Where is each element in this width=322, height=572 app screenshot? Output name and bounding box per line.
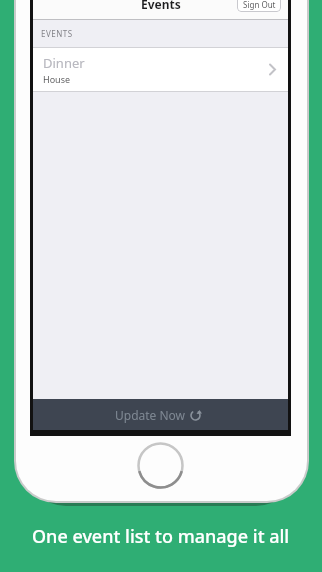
staticText: House bbox=[43, 73, 71, 85]
staticText: Sign Out bbox=[243, 0, 276, 10]
button[interactable]: Update Now bbox=[33, 399, 288, 430]
button[interactable]: Sign Out bbox=[237, 0, 281, 12]
button[interactable]: Dinner bbox=[33, 48, 288, 91]
staticText: Events bbox=[141, 0, 181, 12]
staticText: Dinner bbox=[43, 54, 85, 72]
staticText: Update Now bbox=[115, 407, 186, 423]
staticText: EVENTS bbox=[41, 28, 73, 39]
staticText: One event list to manage it all bbox=[32, 524, 290, 549]
